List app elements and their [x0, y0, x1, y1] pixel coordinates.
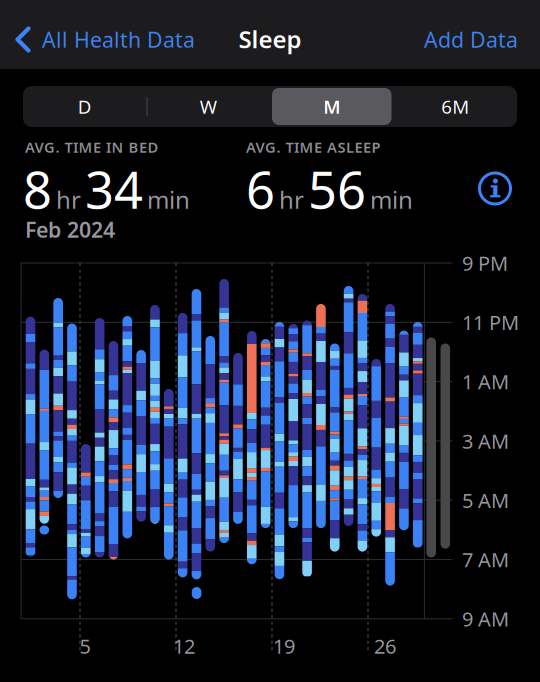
button[interactable]: [473, 166, 517, 210]
button[interactable]: 6M: [394, 86, 517, 127]
staticText: hr: [56, 183, 81, 215]
staticText: Add Data: [424, 25, 518, 54]
staticText: 8: [23, 155, 52, 223]
staticText: min: [370, 183, 413, 215]
staticText: 3 AM: [462, 428, 509, 454]
button[interactable]: M: [270, 86, 393, 127]
staticText: AVG. TIME ASLEEP: [246, 137, 380, 157]
staticText: D: [78, 94, 92, 119]
staticText: 34: [85, 155, 143, 223]
staticText: 26: [374, 633, 396, 659]
staticText: 11 PM: [462, 309, 519, 336]
button[interactable]: W: [147, 86, 270, 127]
staticText: 19: [273, 633, 295, 659]
staticText: 9 PM: [462, 250, 508, 276]
staticText: 6: [246, 155, 275, 223]
staticText: min: [147, 183, 190, 215]
staticText: W: [200, 94, 217, 119]
button[interactable]: Add Data: [358, 0, 518, 69]
staticText: 9 AM: [462, 605, 509, 632]
staticText: 5 AM: [462, 487, 509, 513]
staticText: 1 AM: [462, 368, 509, 395]
staticText: 5: [79, 633, 90, 659]
staticText: Feb 2024: [25, 215, 115, 244]
staticText: AVG. TIME IN BED: [25, 137, 158, 157]
button[interactable]: All Health Data: [0, 0, 300, 69]
staticText: M: [323, 94, 340, 119]
staticText: 6M: [441, 94, 469, 119]
staticText: 56: [308, 155, 366, 223]
staticText: 12: [173, 633, 195, 659]
button[interactable]: D: [23, 86, 146, 127]
staticText: Sleep: [238, 23, 301, 55]
staticText: 7 AM: [462, 546, 509, 573]
staticText: hr: [279, 183, 304, 215]
staticText: All Health Data: [42, 25, 195, 54]
